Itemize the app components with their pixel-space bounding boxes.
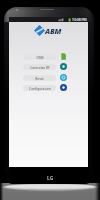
button[interactable]: DSM — [23, 53, 81, 60]
staticText: DSM — [36, 55, 44, 59]
button[interactable]: Configuracion — [23, 84, 81, 91]
staticText: 13:08 PM — [72, 17, 87, 22]
staticText: Configuracion — [29, 86, 51, 90]
staticText: LG — [47, 175, 54, 182]
button[interactable]: Controles RF — [23, 63, 81, 70]
button[interactable]: Reset — [23, 74, 81, 81]
staticText: Controles RF — [30, 65, 50, 69]
staticText: ABM — [45, 26, 62, 36]
staticText: Reset — [35, 76, 44, 80]
